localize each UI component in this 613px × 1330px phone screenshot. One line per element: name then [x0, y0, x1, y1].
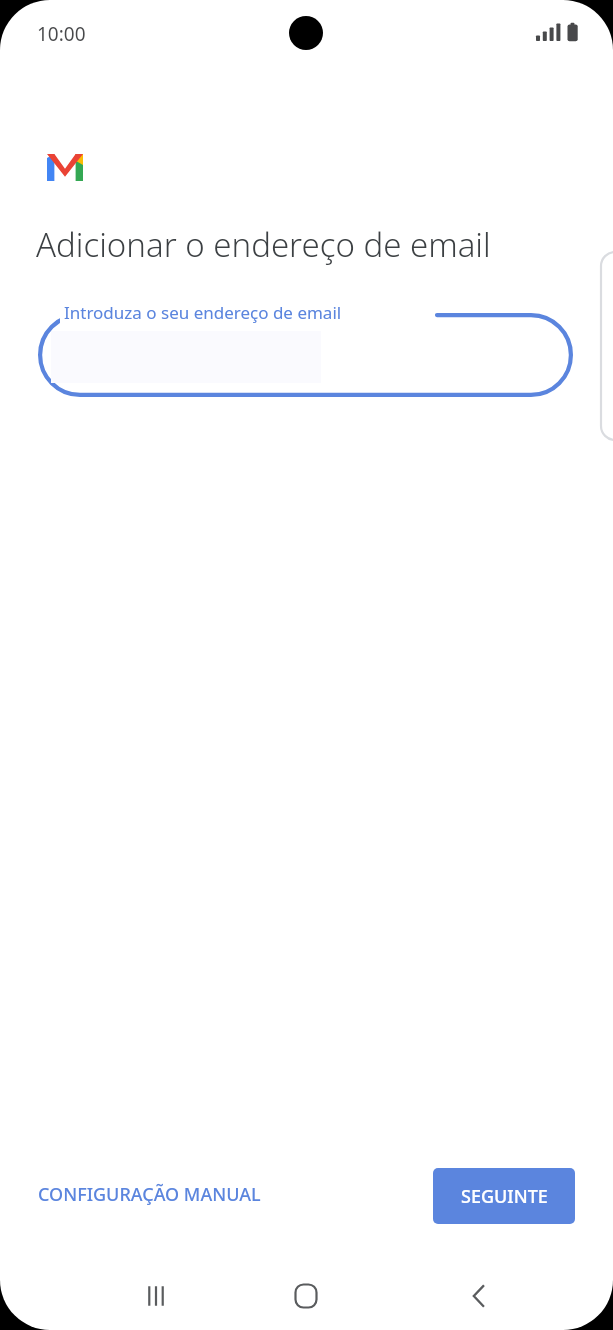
staticText: Adicionar o endereço de email: [36, 222, 491, 267]
staticText: CONFIGURAÇÃO MANUAL: [38, 1182, 261, 1207]
staticText: 10:00: [37, 21, 86, 47]
button[interactable]: Recents: [100, 1262, 212, 1330]
button[interactable]: CONFIGURAÇÃO MANUAL: [24, 1172, 275, 1217]
button[interactable]: [38, 313, 573, 397]
button[interactable]: Back: [423, 1262, 535, 1330]
button[interactable]: Home: [250, 1262, 362, 1330]
button[interactable]: SEGUINTE: [433, 1168, 575, 1224]
staticText: Introduza o seu endereço de email: [64, 301, 342, 324]
staticText: SEGUINTE: [461, 1184, 548, 1209]
